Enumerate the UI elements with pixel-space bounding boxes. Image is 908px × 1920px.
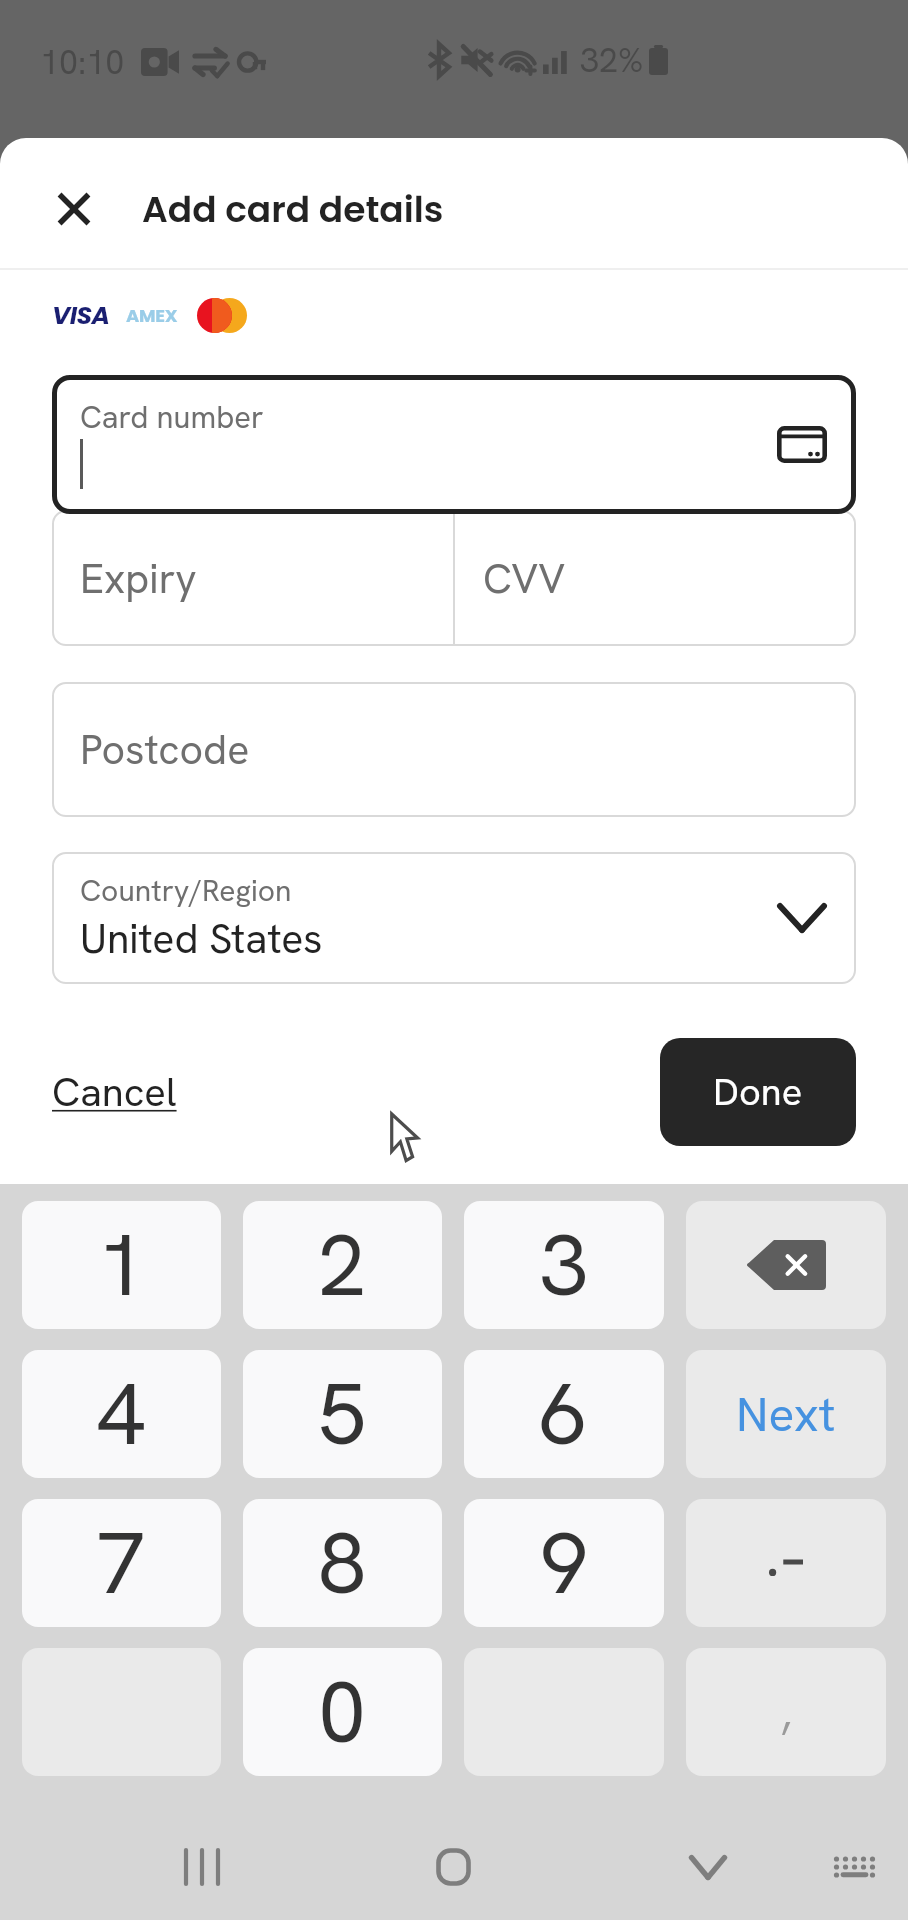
button[interactable]: 3 <box>464 1201 664 1329</box>
staticText: , <box>781 1684 792 1741</box>
button[interactable]: Done <box>660 1038 856 1146</box>
button[interactable]: 6 <box>464 1350 664 1478</box>
staticText: Next <box>736 1383 836 1446</box>
button[interactable]: Cancel <box>52 1066 177 1118</box>
button[interactable]: 5 <box>243 1350 442 1478</box>
staticText: VISA <box>52 298 110 333</box>
button[interactable]: 0 <box>243 1648 442 1776</box>
button[interactable]: 7 <box>22 1499 221 1627</box>
button[interactable]: CVV <box>455 510 856 646</box>
staticText: AMEX <box>126 303 178 328</box>
button[interactable]: Home <box>423 1814 483 1920</box>
button[interactable]: next <box>686 1350 886 1478</box>
button[interactable]: Card number <box>52 375 856 514</box>
button[interactable]: Hide keyboard <box>678 1814 738 1920</box>
staticText: 5 <box>318 1358 367 1470</box>
button[interactable]: backspace <box>686 1201 886 1329</box>
staticText: Postcode <box>80 723 250 776</box>
staticText: Expiry <box>80 552 197 605</box>
staticText: 32% <box>580 38 644 82</box>
staticText: CVV <box>483 552 566 605</box>
button[interactable]: dot <box>686 1499 886 1627</box>
button[interactable]: 9 <box>464 1499 664 1627</box>
staticText: 2 <box>318 1209 367 1321</box>
button[interactable]: 4 <box>22 1350 221 1478</box>
staticText: Cancel <box>52 1066 177 1118</box>
staticText: Done <box>713 1067 803 1117</box>
button[interactable]: Close <box>44 179 104 239</box>
staticText: 3 <box>540 1209 589 1321</box>
staticText: 10:10 <box>40 40 125 84</box>
button[interactable]: Country/Region <box>52 852 856 984</box>
button[interactable]: 2 <box>243 1201 442 1329</box>
button[interactable]: comma <box>686 1648 886 1776</box>
button[interactable]: 8 <box>243 1499 442 1627</box>
staticText: 6 <box>540 1358 589 1470</box>
staticText: 0 <box>318 1656 367 1768</box>
button[interactable]: Change keyboard <box>824 1814 884 1920</box>
button[interactable]: Recent apps <box>170 1814 230 1920</box>
staticText: 7 <box>97 1507 146 1619</box>
staticText: Card number <box>80 397 264 437</box>
staticText: Country/Region <box>80 871 292 910</box>
staticText: 9 <box>540 1507 589 1619</box>
staticText: United States <box>80 912 323 965</box>
staticText: 4 <box>97 1358 146 1470</box>
staticText: 1 <box>97 1209 146 1321</box>
button[interactable]: Expiry <box>52 510 453 646</box>
staticText: 8 <box>318 1507 367 1619</box>
staticText: Add card details <box>142 184 444 234</box>
button[interactable]: 1 <box>22 1201 221 1329</box>
button[interactable]: Postcode <box>52 682 856 817</box>
